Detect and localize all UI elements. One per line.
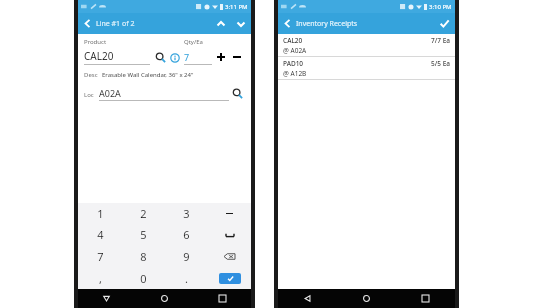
staticText: @ A02A [283, 46, 307, 54]
button[interactable]: 1 [78, 203, 122, 224]
staticText: 9 [183, 249, 190, 264]
button[interactable]: Increase [213, 49, 229, 65]
button[interactable]: Recents [193, 289, 251, 308]
staticText: 4 [97, 227, 104, 242]
button[interactable]: Next [231, 13, 251, 34]
staticText: Product [84, 38, 107, 46]
button[interactable]: Back [278, 289, 337, 308]
button[interactable]: minus [208, 203, 251, 224]
staticText: @ A12B [283, 69, 307, 77]
button[interactable]: 0 [122, 267, 165, 289]
staticText: Erasable Wall Calendar, 36" x 24" [102, 71, 194, 79]
button[interactable]: Info [168, 51, 182, 65]
button[interactable]: Back [78, 289, 135, 308]
staticText: 1 [97, 206, 104, 221]
button[interactable]: 5 [122, 224, 165, 245]
button[interactable]: ok [208, 267, 251, 289]
button[interactable]: Search product [152, 49, 168, 65]
button[interactable]: 8 [122, 245, 165, 267]
button[interactable]: Home [135, 289, 193, 308]
staticText: 2 [140, 206, 147, 221]
button[interactable]: del [208, 245, 251, 267]
button[interactable]: Back [78, 13, 96, 34]
button[interactable]: 9 [165, 245, 208, 267]
staticText: 6 [183, 227, 190, 242]
staticText: A02A [99, 87, 121, 99]
button[interactable]: , [78, 267, 122, 289]
button[interactable]: 7 [78, 245, 122, 267]
button[interactable]: Back [278, 13, 296, 34]
button[interactable]: 6 [165, 224, 208, 245]
button[interactable]: Back [78, 13, 251, 34]
staticText: , [99, 271, 102, 286]
staticText: Desc [84, 71, 98, 79]
staticText: Inventory Receipts [296, 19, 358, 29]
staticText: PAD10 [283, 59, 304, 68]
button[interactable]: CAL20 [278, 34, 455, 56]
button[interactable]: Previous [211, 13, 231, 34]
button[interactable]: space [208, 224, 251, 245]
staticText: 7/7 Ea [431, 36, 450, 45]
button[interactable]: Search location [229, 85, 245, 101]
staticText: 7 [184, 51, 190, 63]
button[interactable]: . [165, 267, 208, 289]
staticText: 5/5 Ea [431, 59, 450, 68]
button[interactable]: 4 [78, 224, 122, 245]
staticText: . [185, 271, 188, 286]
button[interactable]: PAD10 [278, 57, 455, 79]
staticText: 8 [140, 249, 147, 264]
staticText: Line #1 of 2 [96, 19, 135, 29]
staticText: 5 [140, 227, 147, 242]
staticText: Qty/Ea [184, 38, 203, 46]
button[interactable]: 3 [165, 203, 208, 224]
staticText: 7 [97, 249, 104, 264]
staticText: CAL20 [84, 49, 114, 63]
button[interactable]: Confirm [433, 13, 455, 34]
staticText: 3:10 PM [429, 3, 452, 11]
staticText: 3:11 PM [225, 3, 248, 11]
button[interactable]: 2 [122, 203, 165, 224]
button[interactable]: Decrease [229, 49, 245, 65]
staticText: 3 [183, 206, 190, 221]
staticText: 0 [140, 271, 147, 286]
button[interactable]: Home [337, 289, 396, 308]
staticText: CAL20 [283, 36, 303, 45]
staticText: Loc [84, 91, 94, 99]
button[interactable]: Back [278, 13, 455, 34]
button[interactable]: Recents [396, 289, 455, 308]
